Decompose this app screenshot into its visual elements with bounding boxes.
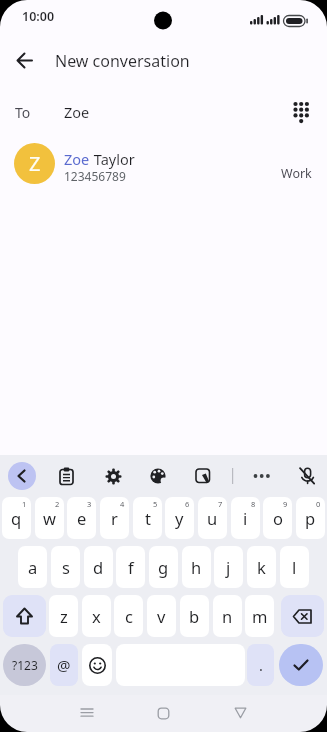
staticText: z bbox=[60, 605, 68, 627]
staticText: h bbox=[191, 556, 202, 578]
button[interactable] bbox=[3, 595, 46, 637]
button[interactable] bbox=[281, 595, 324, 637]
staticText: 4 bbox=[120, 499, 125, 509]
button[interactable] bbox=[8, 462, 36, 490]
staticText: 9 bbox=[283, 499, 288, 509]
button[interactable]: g bbox=[149, 546, 178, 588]
button[interactable]: n bbox=[213, 595, 242, 637]
staticText: s bbox=[62, 556, 70, 578]
button[interactable]: l bbox=[280, 546, 309, 588]
button[interactable] bbox=[147, 697, 179, 729]
button[interactable] bbox=[10, 46, 38, 74]
staticText: t bbox=[145, 507, 151, 529]
staticText: Zoe bbox=[64, 149, 90, 169]
button[interactable]: a bbox=[18, 546, 47, 588]
button[interactable]: c bbox=[114, 595, 143, 637]
button[interactable]: o bbox=[263, 497, 292, 539]
button[interactable] bbox=[51, 461, 81, 491]
staticText: 3 bbox=[87, 499, 92, 509]
staticText: l bbox=[292, 556, 297, 578]
button[interactable] bbox=[82, 644, 112, 686]
staticText: i bbox=[243, 507, 248, 529]
staticText: c bbox=[125, 605, 133, 627]
staticText: u bbox=[207, 507, 218, 529]
staticText: ?123 bbox=[12, 657, 38, 673]
staticText: f bbox=[128, 556, 134, 578]
button[interactable] bbox=[286, 84, 316, 140]
button[interactable]: m bbox=[245, 595, 274, 637]
staticText: @ bbox=[57, 655, 71, 675]
staticText: e bbox=[77, 507, 87, 529]
staticText: v bbox=[157, 605, 166, 627]
staticText: 8 bbox=[251, 499, 256, 509]
button[interactable]: ?123 bbox=[3, 644, 46, 686]
button[interactable]: v bbox=[147, 595, 176, 637]
staticText: To bbox=[15, 103, 31, 122]
button[interactable]: b bbox=[180, 595, 209, 637]
staticText: Zoe bbox=[64, 102, 90, 122]
button[interactable]: i bbox=[231, 497, 260, 539]
button[interactable]: x bbox=[82, 595, 111, 637]
staticText: j bbox=[226, 556, 231, 578]
staticText: 123456789 bbox=[64, 168, 126, 184]
button[interactable]: h bbox=[182, 546, 211, 588]
staticText: 2 bbox=[55, 499, 60, 509]
button[interactable]: t bbox=[133, 497, 162, 539]
staticText: r bbox=[111, 507, 118, 529]
button[interactable] bbox=[292, 461, 322, 491]
staticText: 6 bbox=[185, 499, 190, 509]
button[interactable]: w bbox=[35, 497, 64, 539]
staticText: b bbox=[189, 605, 200, 627]
button[interactable]: z bbox=[49, 595, 78, 637]
button[interactable] bbox=[224, 697, 256, 729]
staticText: y bbox=[175, 507, 184, 529]
button[interactable]: @ bbox=[50, 644, 78, 686]
staticText: m bbox=[252, 605, 268, 627]
staticText: 5 bbox=[153, 499, 158, 509]
button[interactable]: s bbox=[51, 546, 80, 588]
staticText: Taylor bbox=[90, 149, 135, 169]
button[interactable]: r bbox=[100, 497, 129, 539]
staticText: o bbox=[273, 507, 283, 529]
button[interactable]: u bbox=[198, 497, 227, 539]
staticText: k bbox=[257, 556, 266, 578]
button[interactable]: To bbox=[0, 84, 327, 140]
button[interactable]: Z bbox=[0, 140, 327, 199]
staticText: 1 bbox=[22, 499, 27, 509]
button[interactable] bbox=[143, 461, 173, 491]
button[interactable] bbox=[247, 461, 277, 491]
staticText: w bbox=[43, 507, 56, 529]
button[interactable]: . bbox=[247, 644, 274, 686]
staticText: d bbox=[93, 556, 104, 578]
staticText: q bbox=[11, 507, 22, 529]
button[interactable] bbox=[71, 697, 103, 729]
staticText: 0 bbox=[316, 499, 321, 509]
button[interactable]: e bbox=[67, 497, 96, 539]
button[interactable]: d bbox=[84, 546, 113, 588]
staticText: g bbox=[158, 556, 169, 578]
button[interactable]: p bbox=[296, 497, 325, 539]
staticText: . bbox=[259, 655, 263, 675]
button[interactable]: y bbox=[165, 497, 194, 539]
button[interactable] bbox=[188, 461, 218, 491]
staticText: n bbox=[222, 605, 233, 627]
staticText: Work bbox=[281, 165, 312, 182]
button[interactable] bbox=[279, 644, 323, 686]
button[interactable]: j bbox=[214, 546, 243, 588]
button[interactable] bbox=[98, 461, 128, 491]
button[interactable]: f bbox=[116, 546, 145, 588]
button[interactable]: k bbox=[247, 546, 276, 588]
staticText: New conversation bbox=[55, 50, 190, 72]
staticText: Z bbox=[29, 150, 41, 177]
staticText: x bbox=[92, 605, 101, 627]
staticText: p bbox=[305, 507, 316, 529]
staticText: a bbox=[28, 556, 38, 578]
staticText: 7 bbox=[218, 499, 223, 509]
button[interactable]: q bbox=[2, 497, 31, 539]
staticText: 10:00 bbox=[22, 8, 55, 25]
